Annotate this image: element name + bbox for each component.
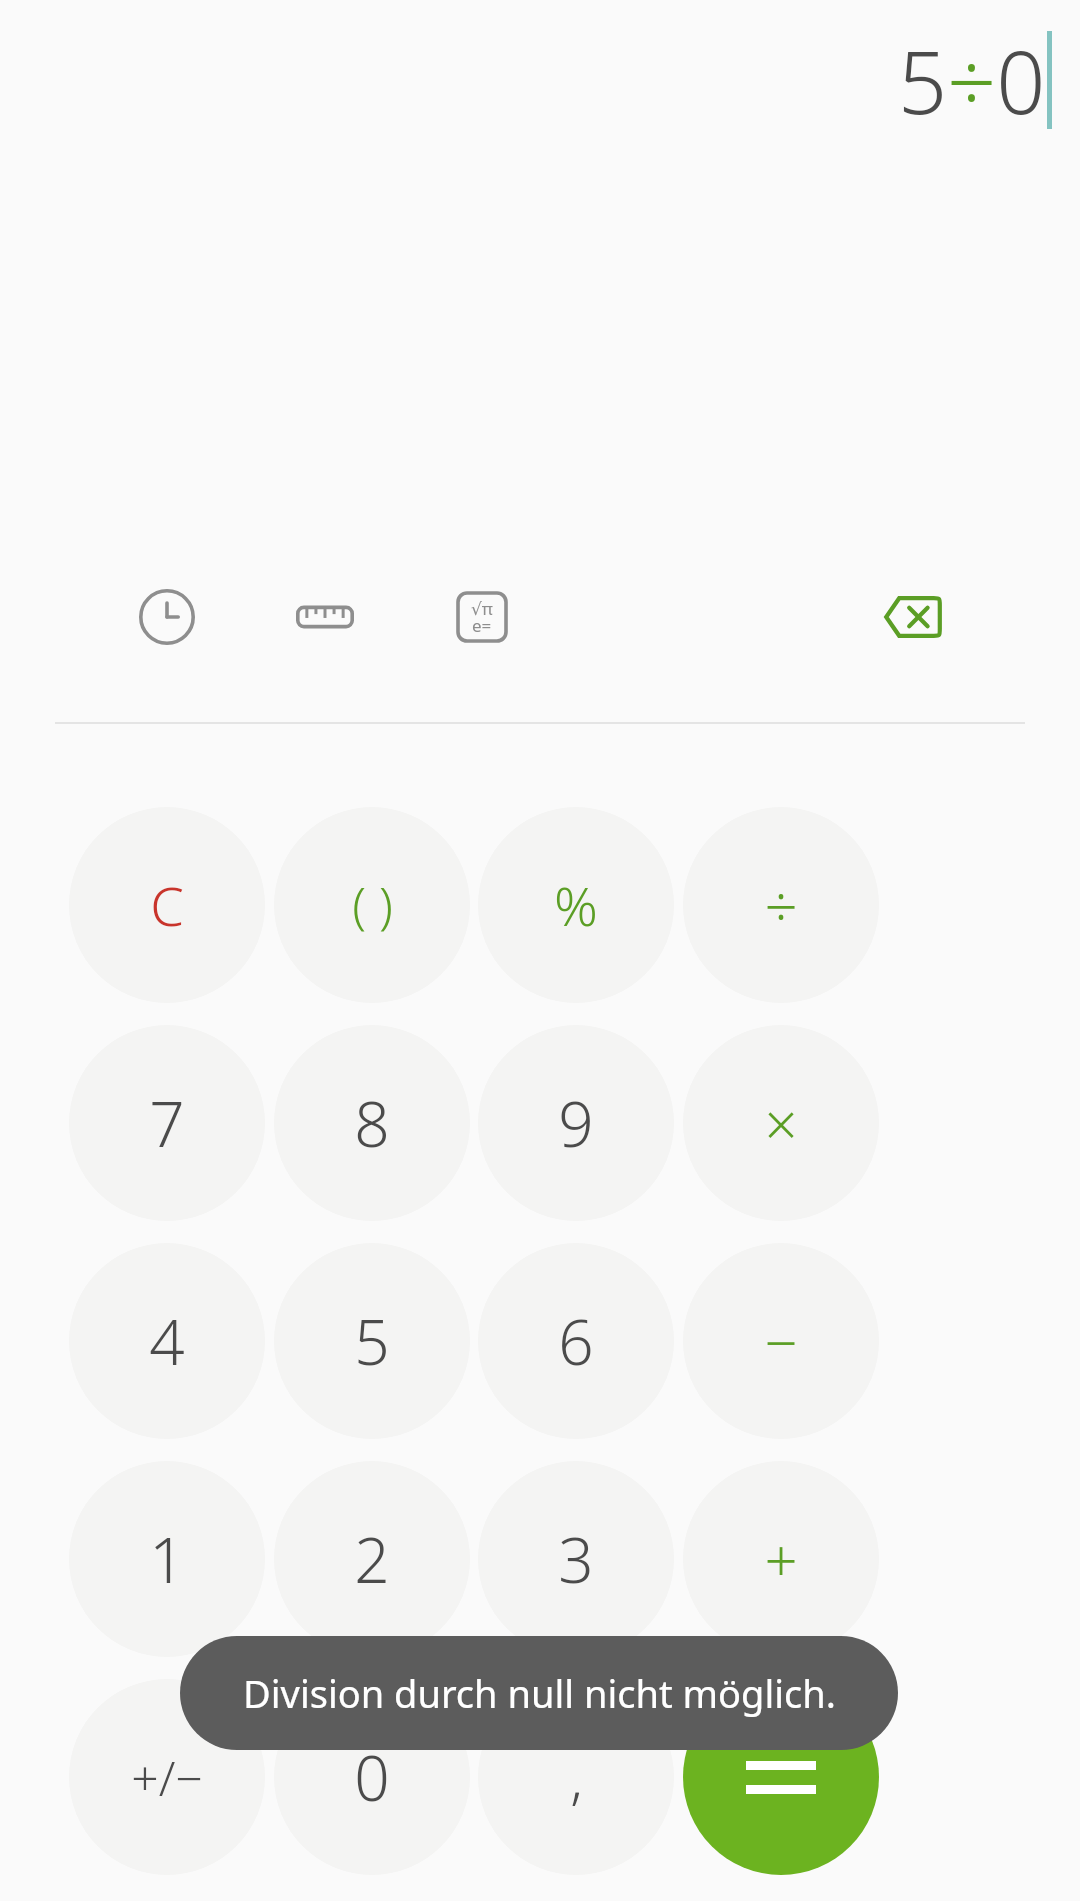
button[interactable]: ( ) (274, 807, 470, 1003)
button[interactable]: Unit converter (271, 563, 379, 671)
staticText: ÷ (764, 866, 798, 945)
staticText: 5 (354, 1299, 390, 1383)
staticText: 3 (558, 1517, 594, 1601)
button[interactable]: Equals (683, 1679, 879, 1875)
staticText: 9 (558, 1081, 594, 1165)
staticText: C (150, 868, 184, 942)
button[interactable]: Backspace (858, 563, 966, 671)
staticText: 7 (149, 1081, 185, 1165)
button[interactable]: ÷ (683, 807, 879, 1003)
button[interactable]: 8 (274, 1025, 470, 1221)
button[interactable]: , (478, 1679, 674, 1875)
staticText: 6 (558, 1299, 594, 1383)
button[interactable]: +/− (69, 1679, 265, 1875)
button[interactable]: 1 (69, 1461, 265, 1657)
staticText: , (570, 1739, 583, 1815)
staticText: % (554, 868, 598, 942)
staticText: 4 (149, 1299, 185, 1383)
button[interactable]: History (113, 563, 221, 671)
staticText: 0 (354, 1735, 390, 1819)
staticText: e= (472, 614, 492, 637)
staticText: 1 (149, 1517, 185, 1601)
button[interactable]: 0 (274, 1679, 470, 1875)
button[interactable]: 9 (478, 1025, 674, 1221)
button[interactable]: 6 (478, 1243, 674, 1439)
button[interactable]: 7 (69, 1025, 265, 1221)
button[interactable]: 2 (274, 1461, 470, 1657)
button[interactable]: × (683, 1025, 879, 1221)
button[interactable]: + (683, 1461, 879, 1657)
staticText: 2 (354, 1517, 390, 1601)
staticText: + (764, 1520, 798, 1599)
staticText: × (764, 1084, 798, 1163)
button[interactable]: C (69, 807, 265, 1003)
staticText: +/− (131, 1745, 203, 1810)
button[interactable]: % (478, 807, 674, 1003)
button[interactable]: 3 (478, 1461, 674, 1657)
staticText: √π (471, 597, 493, 620)
staticText: − (764, 1302, 798, 1381)
button[interactable]: 4 (69, 1243, 265, 1439)
staticText: ( ) (352, 871, 393, 939)
staticText: 5÷0 (898, 22, 1046, 139)
button[interactable]: 5 (274, 1243, 470, 1439)
staticText: 8 (354, 1081, 390, 1165)
button[interactable]: − (683, 1243, 879, 1439)
button[interactable]: Scientific functions (428, 563, 536, 671)
staticText: Division durch null nicht möglich. (243, 1667, 836, 1719)
